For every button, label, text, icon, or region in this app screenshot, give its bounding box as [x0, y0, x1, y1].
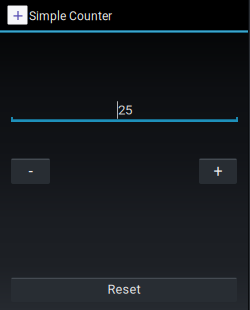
button[interactable]: + [199, 158, 237, 184]
button[interactable]: Reset [11, 277, 237, 302]
staticText: Simple Counter [29, 9, 112, 23]
button[interactable]: - [11, 158, 50, 184]
staticText: + [213, 162, 222, 180]
staticText: Reset [107, 282, 140, 297]
staticText: 25 [118, 102, 132, 118]
staticText: - [28, 162, 32, 181]
